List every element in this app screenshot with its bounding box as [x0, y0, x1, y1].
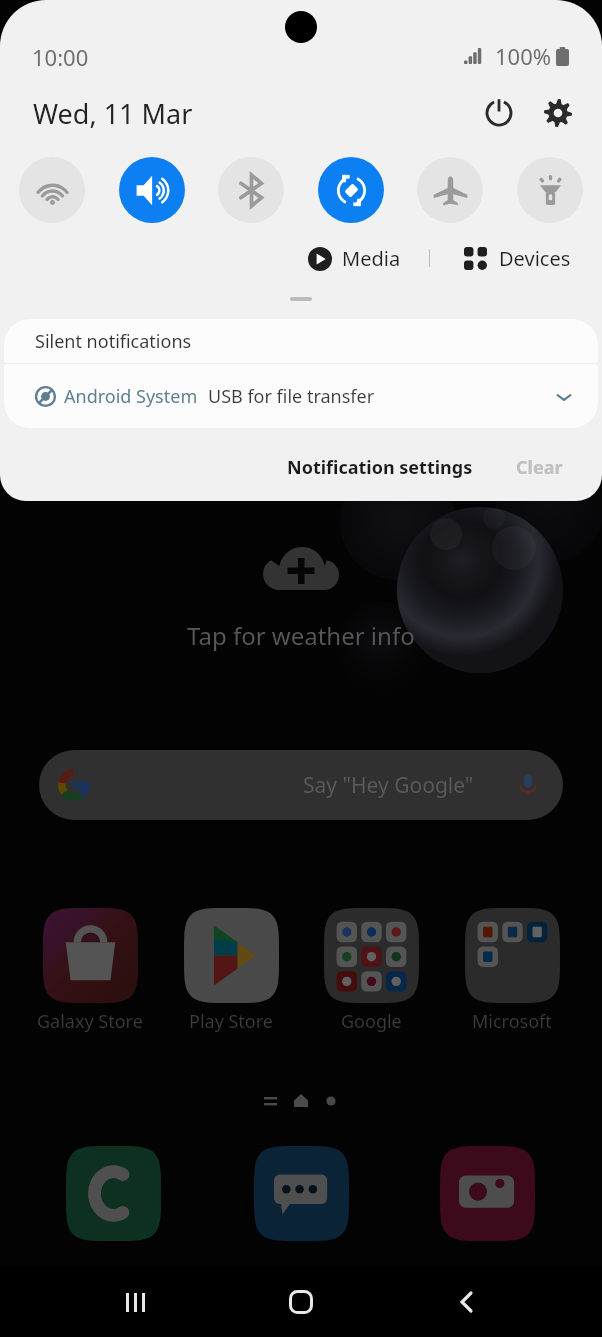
button[interactable]: Media — [308, 245, 401, 272]
staticText: Play Store — [189, 1009, 273, 1033]
button[interactable]: Bluetooth — [218, 157, 284, 223]
staticText: Devices — [499, 245, 571, 272]
button[interactable]: Home — [271, 1272, 331, 1332]
button[interactable]: Sound — [119, 157, 185, 223]
button[interactable]: Back — [437, 1272, 497, 1332]
button[interactable]: Camera — [440, 1146, 535, 1241]
button[interactable]: Microsoft — [437, 908, 587, 1033]
staticText: Android System — [64, 384, 198, 409]
button[interactable]: Recents — [106, 1272, 166, 1332]
button[interactable]: Power off — [477, 91, 521, 135]
button[interactable]: Tap for weather info — [0, 619, 602, 652]
button[interactable]: Say "Hey Google" — [39, 750, 563, 820]
staticText: Google — [341, 1009, 402, 1033]
button[interactable]: Clear — [508, 445, 571, 490]
button[interactable]: Android System — [4, 364, 598, 428]
staticText: Say "Hey Google" — [303, 771, 474, 800]
button[interactable]: Phone — [66, 1146, 161, 1241]
button[interactable]: Google — [296, 908, 446, 1033]
staticText: Wed, 11 Mar — [33, 95, 193, 132]
button[interactable]: Settings — [536, 91, 580, 135]
button[interactable]: Auto rotate — [318, 157, 384, 223]
button[interactable]: Messages — [254, 1146, 349, 1241]
staticText: Silent notifications — [35, 329, 192, 354]
staticText: 10:00 — [32, 42, 89, 72]
button[interactable]: Airplane mode — [417, 157, 483, 223]
staticText: Clear — [516, 455, 563, 480]
button[interactable]: Devices — [464, 245, 571, 272]
button[interactable]: Silent notifications — [4, 319, 598, 363]
staticText: Media — [342, 245, 401, 272]
staticText: Microsoft — [472, 1009, 552, 1033]
staticText: Notification settings — [287, 455, 473, 480]
button[interactable]: Play Store — [156, 908, 306, 1033]
staticText: Galaxy Store — [37, 1009, 143, 1033]
staticText: USB for file transfer — [208, 384, 375, 409]
button[interactable]: Galaxy Store — [15, 908, 165, 1033]
button[interactable]: Flashlight — [517, 157, 583, 223]
button[interactable]: Notification settings — [279, 445, 481, 490]
staticText: Tap for weather info — [187, 619, 415, 652]
button[interactable]: Wi-Fi — [19, 157, 85, 223]
staticText: 100% — [495, 41, 552, 71]
